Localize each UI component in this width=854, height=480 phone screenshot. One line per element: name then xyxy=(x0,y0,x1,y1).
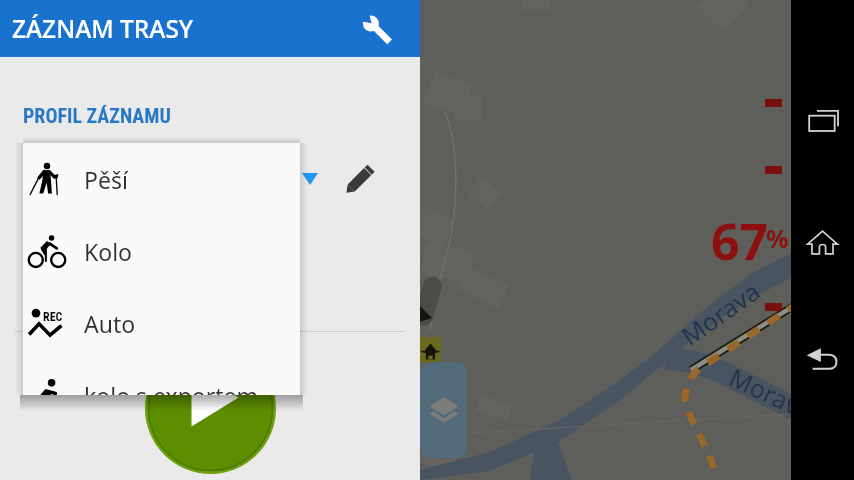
button[interactable]: Map layers xyxy=(420,362,467,458)
button[interactable]: Auto xyxy=(23,287,300,359)
button[interactable]: kolo s exportem xyxy=(23,359,300,395)
staticText: Auto xyxy=(84,308,136,339)
staticText: ZÁZNAM TRASY xyxy=(12,12,194,45)
button[interactable]: Start recording xyxy=(145,343,276,474)
button[interactable]: Back xyxy=(791,330,854,382)
button[interactable]: Kolo xyxy=(23,215,300,287)
button[interactable]: Settings xyxy=(356,9,396,49)
staticText: Morava xyxy=(724,360,819,428)
staticText: kolo s exportem xyxy=(84,380,259,395)
staticText: 67 xyxy=(711,207,769,275)
staticText: Kolo xyxy=(84,236,133,267)
button[interactable]: Recents xyxy=(791,96,854,148)
staticText: PROFIL ZÁZNAMU xyxy=(23,104,171,127)
button[interactable]: Home xyxy=(791,216,854,268)
staticText: Morava xyxy=(674,274,767,352)
button[interactable]: Pěší xyxy=(23,143,300,215)
staticText: % xyxy=(766,221,789,255)
button[interactable]: Edit profile xyxy=(339,160,379,200)
staticText: Pěší xyxy=(84,164,128,195)
staticText: REC xyxy=(43,310,63,324)
